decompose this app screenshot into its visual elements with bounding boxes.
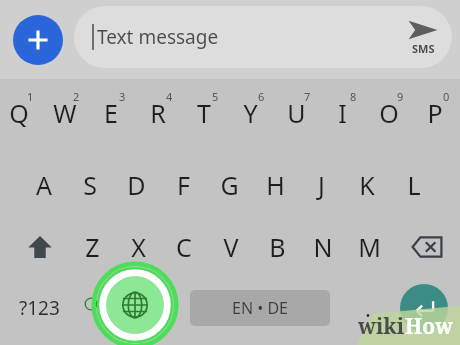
staticText: ?123: [19, 295, 60, 321]
button[interactable]: U: [273, 88, 319, 138]
staticText: 3: [119, 89, 126, 104]
button[interactable]: Text message: [74, 6, 452, 68]
staticText: 8: [350, 89, 357, 104]
staticText: H: [266, 168, 285, 202]
button[interactable]: Q: [0, 88, 42, 138]
staticText: J: [318, 168, 325, 202]
staticText: T: [197, 96, 211, 130]
button[interactable]: Backspace: [402, 222, 452, 272]
button[interactable]: N: [300, 222, 346, 272]
staticText: U: [287, 96, 306, 130]
staticText: B: [269, 230, 286, 264]
button[interactable]: C: [161, 222, 207, 272]
staticText: N: [313, 230, 333, 264]
staticText: G: [220, 168, 239, 202]
button[interactable]: V: [208, 222, 254, 272]
button[interactable]: Enter: [400, 284, 448, 332]
button[interactable]: P: [412, 88, 458, 138]
staticText: C: [176, 230, 192, 264]
button[interactable]: X: [115, 222, 161, 272]
staticText: V: [223, 230, 239, 264]
staticText: How: [405, 312, 454, 341]
button[interactable]: W: [42, 88, 88, 138]
staticText: D: [127, 168, 146, 202]
staticText: Text message: [97, 24, 219, 50]
staticText: W: [53, 96, 77, 130]
staticText: 1: [27, 89, 34, 104]
staticText: O: [379, 96, 399, 130]
staticText: 6: [258, 89, 265, 104]
staticText: L: [407, 168, 421, 202]
staticText: R: [150, 96, 166, 130]
button[interactable]: .: [348, 283, 388, 333]
button[interactable]: T: [181, 88, 227, 138]
button[interactable]: G: [206, 160, 252, 210]
staticText: X: [131, 230, 146, 264]
staticText: 9: [397, 89, 404, 104]
button[interactable]: R: [135, 88, 181, 138]
button[interactable]: ?123: [4, 283, 74, 333]
button[interactable]: F: [160, 160, 206, 210]
button[interactable]: Z: [69, 222, 115, 272]
button[interactable]: L: [391, 160, 437, 210]
button[interactable]: M: [346, 222, 392, 272]
button[interactable]: E: [88, 88, 134, 138]
button[interactable]: D: [113, 160, 159, 210]
button[interactable]: Shift: [14, 222, 66, 272]
button[interactable]: Add attachment: [13, 15, 63, 65]
staticText: P: [427, 96, 443, 130]
button[interactable]: K: [344, 160, 390, 210]
staticText: SMS: [412, 41, 435, 56]
staticText: I: [338, 96, 347, 130]
staticText: K: [359, 168, 375, 202]
button[interactable]: EN • DE: [190, 290, 330, 326]
button[interactable]: J: [298, 160, 344, 210]
staticText: 7: [304, 89, 311, 104]
staticText: E: [104, 96, 118, 130]
button[interactable]: B: [254, 222, 300, 272]
staticText: Z: [85, 230, 100, 264]
staticText: EN • DE: [232, 297, 288, 319]
button[interactable]: Y: [227, 88, 273, 138]
staticText: .: [365, 293, 371, 323]
staticText: 2: [73, 89, 80, 104]
staticText: 0: [443, 89, 450, 104]
staticText: 5: [212, 89, 219, 104]
button[interactable]: S: [67, 160, 113, 210]
staticText: S: [83, 168, 97, 202]
button[interactable]: Send SMS: [408, 19, 438, 56]
staticText: Y: [243, 96, 258, 130]
staticText: A: [36, 168, 52, 202]
staticText: 4: [166, 89, 173, 104]
staticText: M: [358, 230, 381, 264]
button[interactable]: I: [319, 88, 365, 138]
button[interactable]: A: [21, 160, 67, 210]
button[interactable]: H: [252, 160, 298, 210]
staticText: F: [177, 168, 190, 202]
button[interactable]: O: [366, 88, 412, 138]
button[interactable]: Switch language: [105, 275, 165, 335]
staticText: wiki: [358, 312, 405, 341]
staticText: Q: [9, 96, 29, 130]
